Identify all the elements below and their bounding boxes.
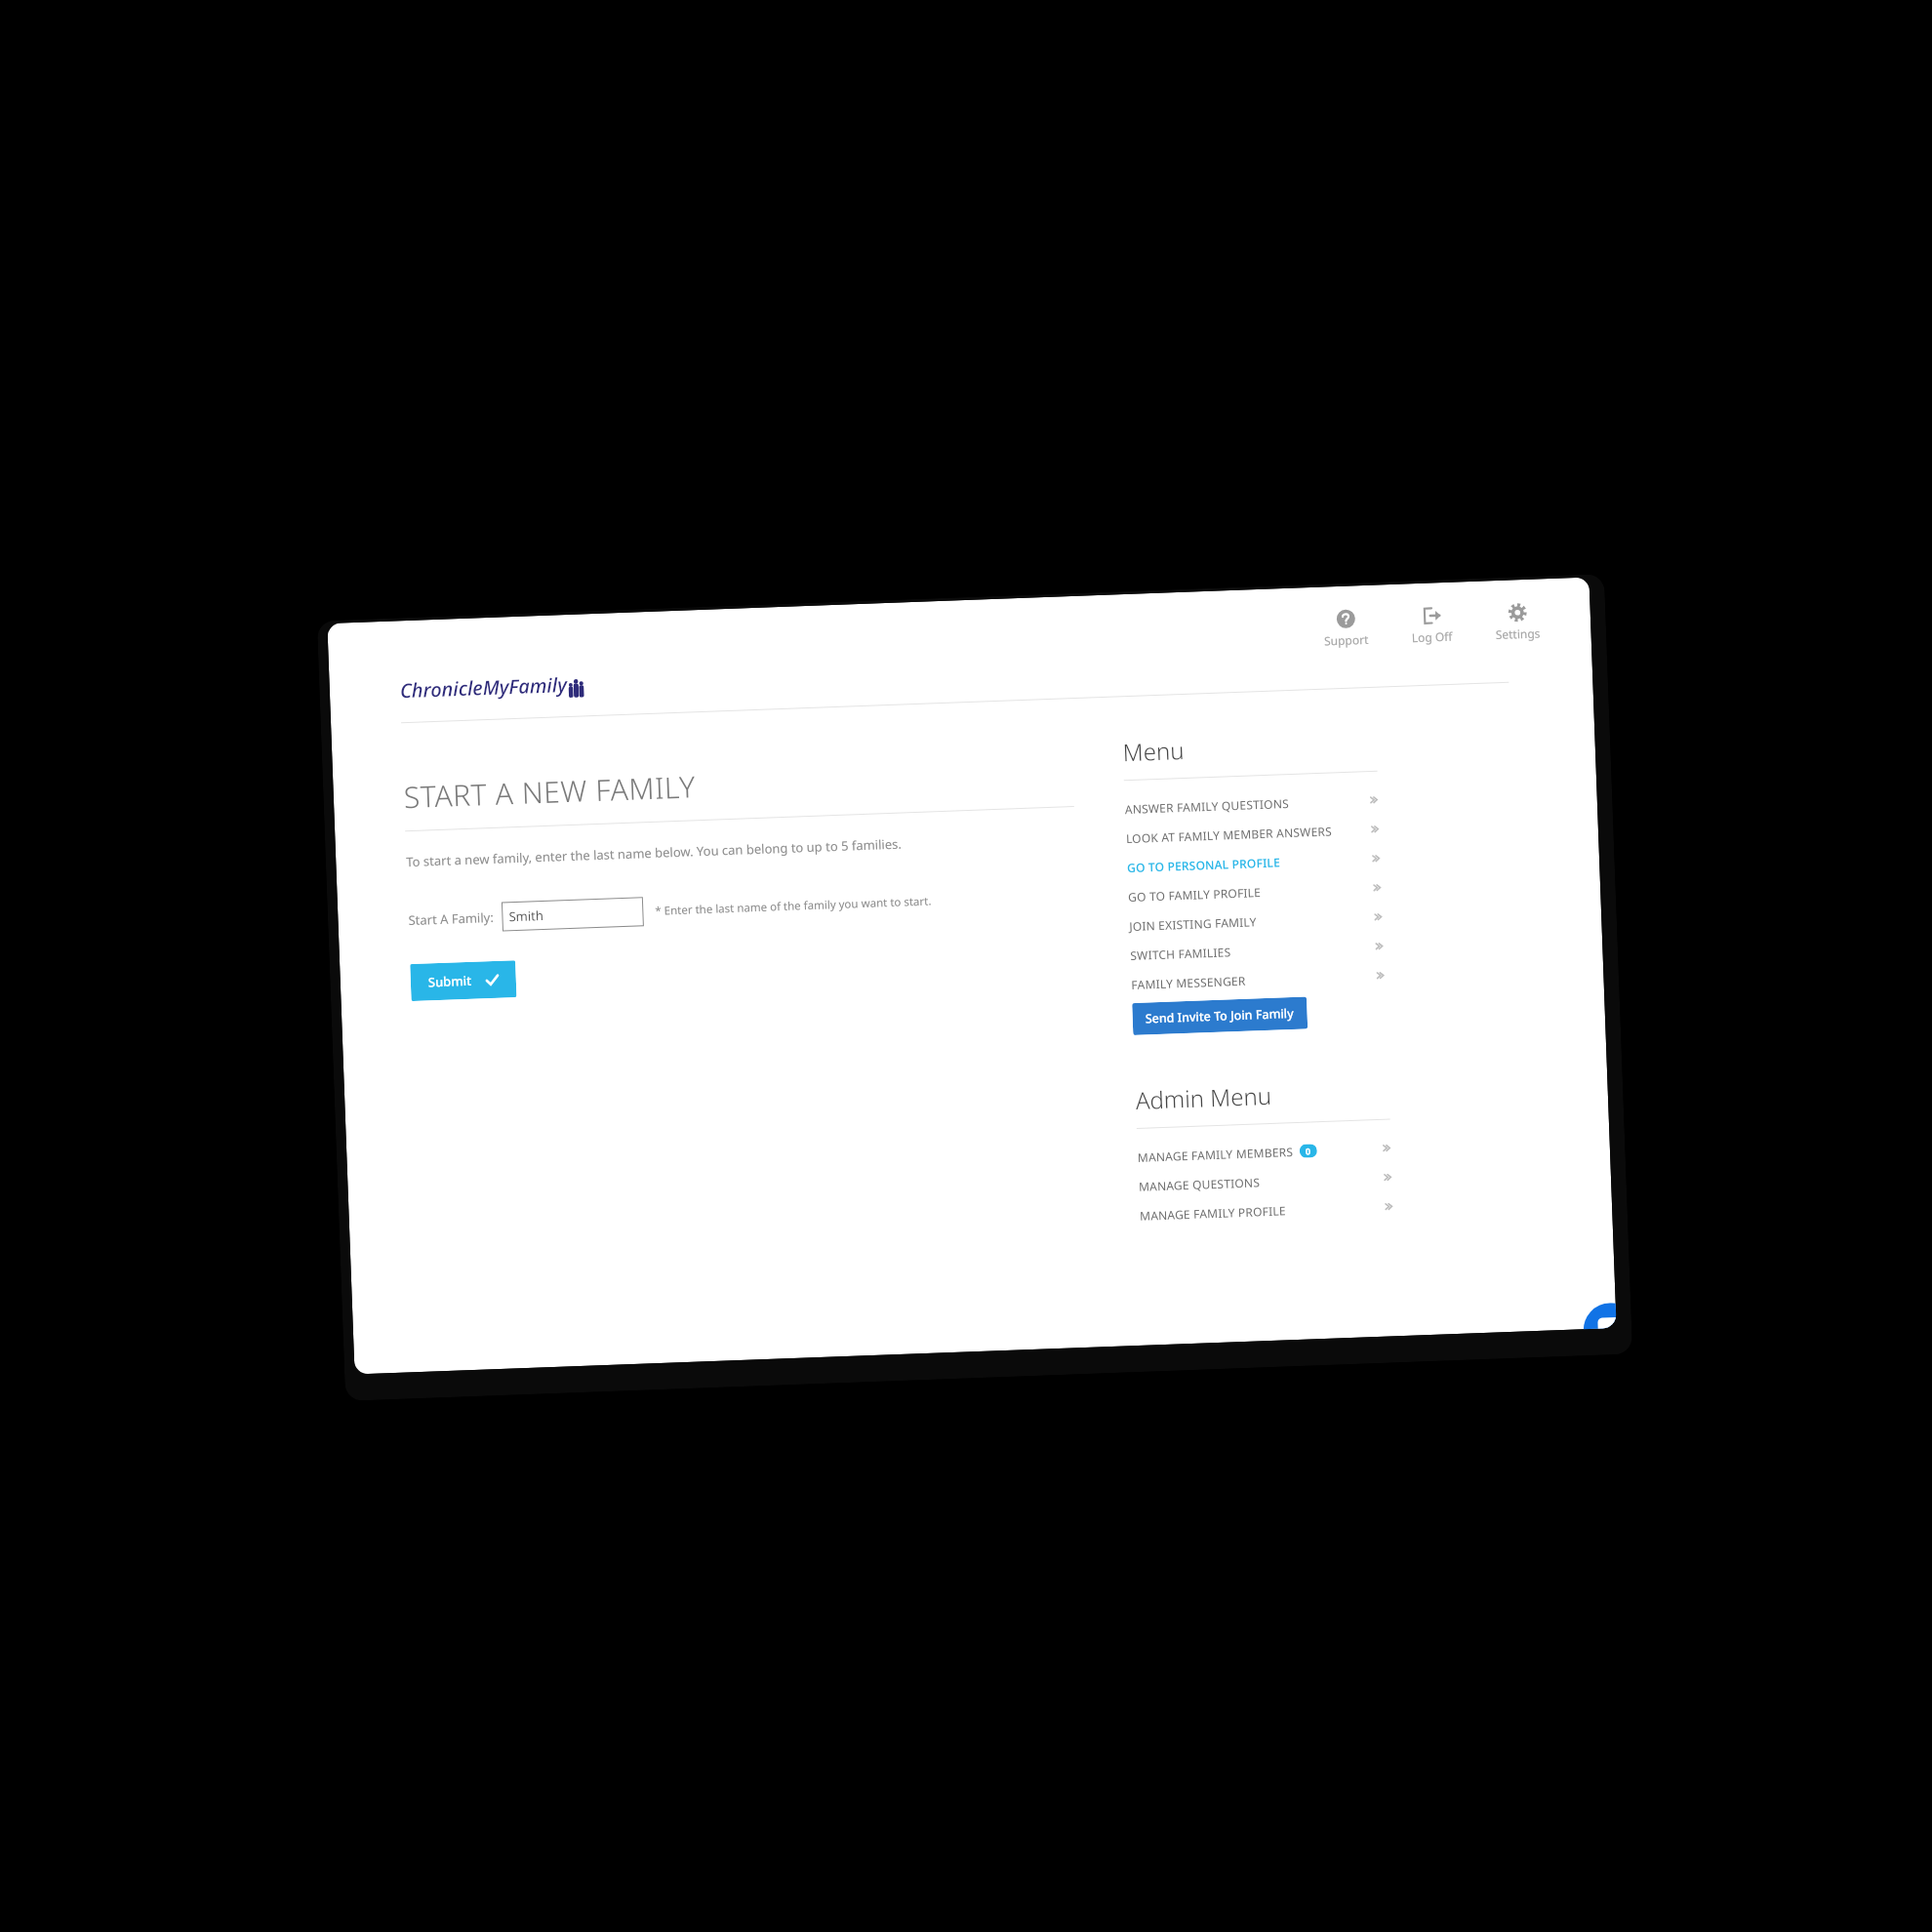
staticText: To start a new family, enter the last na… — [406, 835, 902, 871]
button[interactable]: Log Off — [1397, 603, 1466, 648]
button[interactable]: FAMILY MESSENGER — [1131, 961, 1385, 999]
button[interactable]: Send Invite To Join Family — [1132, 997, 1308, 1035]
button[interactable]: MANAGE QUESTIONS — [1138, 1163, 1393, 1201]
staticText: ANSWER FAMILY QUESTIONS — [1125, 795, 1290, 817]
button[interactable]: MANAGE FAMILY MEMBERS — [1137, 1133, 1392, 1172]
staticText: 0 — [1305, 1145, 1311, 1157]
staticText: MANAGE FAMILY MEMBERS — [1137, 1144, 1294, 1165]
staticText: Support — [1324, 631, 1369, 648]
button[interactable]: MANAGE FAMILY PROFILE — [1139, 1192, 1394, 1230]
button[interactable]: Open chat — [1582, 1303, 1616, 1329]
button[interactable]: GO TO PERSONAL PROFILE — [1127, 844, 1381, 882]
staticText: Start A Family: — [408, 908, 495, 929]
button[interactable]: Settings — [1482, 600, 1552, 644]
staticText: Send Invite To Join Family — [1145, 1005, 1295, 1027]
button[interactable]: Support — [1311, 606, 1381, 651]
staticText: LOOK AT FAMILY MEMBER ANSWERS — [1126, 823, 1332, 846]
staticText: GO TO FAMILY PROFILE — [1128, 884, 1261, 905]
staticText: Smith — [508, 906, 544, 925]
button[interactable]: SWITCH FAMILIES — [1130, 931, 1384, 970]
staticText: FAMILY MESSENGER — [1131, 973, 1247, 992]
staticText: GO TO PERSONAL PROFILE — [1127, 854, 1280, 875]
button[interactable]: ChronicleMyFamily — [399, 671, 585, 704]
button[interactable]: Smith — [501, 897, 644, 931]
button[interactable]: LOOK AT FAMILY MEMBER ANSWERS — [1125, 814, 1380, 853]
staticText: Menu — [1122, 734, 1185, 768]
button[interactable]: JOIN EXISTING FAMILY — [1129, 902, 1383, 941]
staticText: Admin Menu — [1135, 1079, 1273, 1116]
staticText: SWITCH FAMILIES — [1130, 944, 1232, 963]
button[interactable]: GO TO FAMILY PROFILE — [1128, 873, 1382, 911]
staticText: MANAGE QUESTIONS — [1138, 1174, 1261, 1194]
staticText: MANAGE FAMILY PROFILE — [1139, 1203, 1286, 1224]
staticText: Settings — [1495, 625, 1541, 642]
button[interactable]: ANSWER FAMILY QUESTIONS — [1124, 785, 1379, 824]
staticText: Submit — [428, 972, 472, 991]
staticText: ChronicleMyFamily — [399, 671, 567, 704]
staticText: * Enter the last name of the family you … — [655, 893, 932, 919]
button[interactable]: Submit — [410, 960, 517, 1001]
staticText: START A NEW FAMILY — [403, 766, 697, 817]
staticText: Log Off — [1411, 628, 1453, 645]
staticText: JOIN EXISTING FAMILY — [1129, 914, 1257, 934]
